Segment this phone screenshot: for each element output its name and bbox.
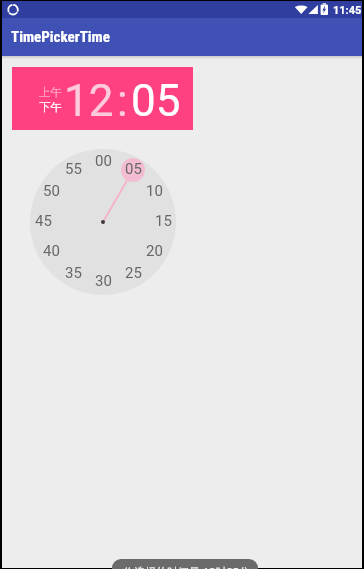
staticText: 55 [65,160,82,176]
staticText: 上午 [39,85,62,99]
staticText: 45 [35,212,52,228]
button[interactable]: 35 [59,264,87,280]
staticText: 40 [43,242,60,258]
button[interactable]: 05 [119,160,147,176]
staticText: : [117,75,128,127]
staticText: 50 [43,182,60,198]
button[interactable]: 15 [149,212,177,228]
staticText: 20 [146,242,163,258]
button[interactable]: 40 [37,242,65,258]
button[interactable]: 30 [89,272,117,288]
button[interactable]: 20 [140,242,168,258]
button[interactable]: 10 [140,182,168,198]
staticText: TimePickerTime [11,28,110,46]
staticText: 你选择的时间是:12时05分 [123,564,251,569]
button[interactable]: 00 [89,152,117,168]
staticText: 00 [95,152,112,168]
button[interactable]: 12 [64,75,114,127]
staticText: 10 [146,182,163,198]
staticText: 下午 [39,100,62,114]
button[interactable]: 上午 [30,85,70,99]
button[interactable]: 50 [37,182,65,198]
button[interactable]: 45 [29,212,57,228]
staticText: 05 [125,160,142,176]
staticText: 30 [95,272,112,288]
button[interactable]: 下午 [30,100,70,114]
button[interactable]: 55 [59,160,87,176]
staticText: 15 [155,212,172,228]
staticText: 11:45 [333,4,362,17]
staticText: 25 [125,264,142,280]
staticText: 35 [65,264,82,280]
button[interactable]: 05 [131,75,181,127]
button[interactable]: 25 [119,264,147,280]
